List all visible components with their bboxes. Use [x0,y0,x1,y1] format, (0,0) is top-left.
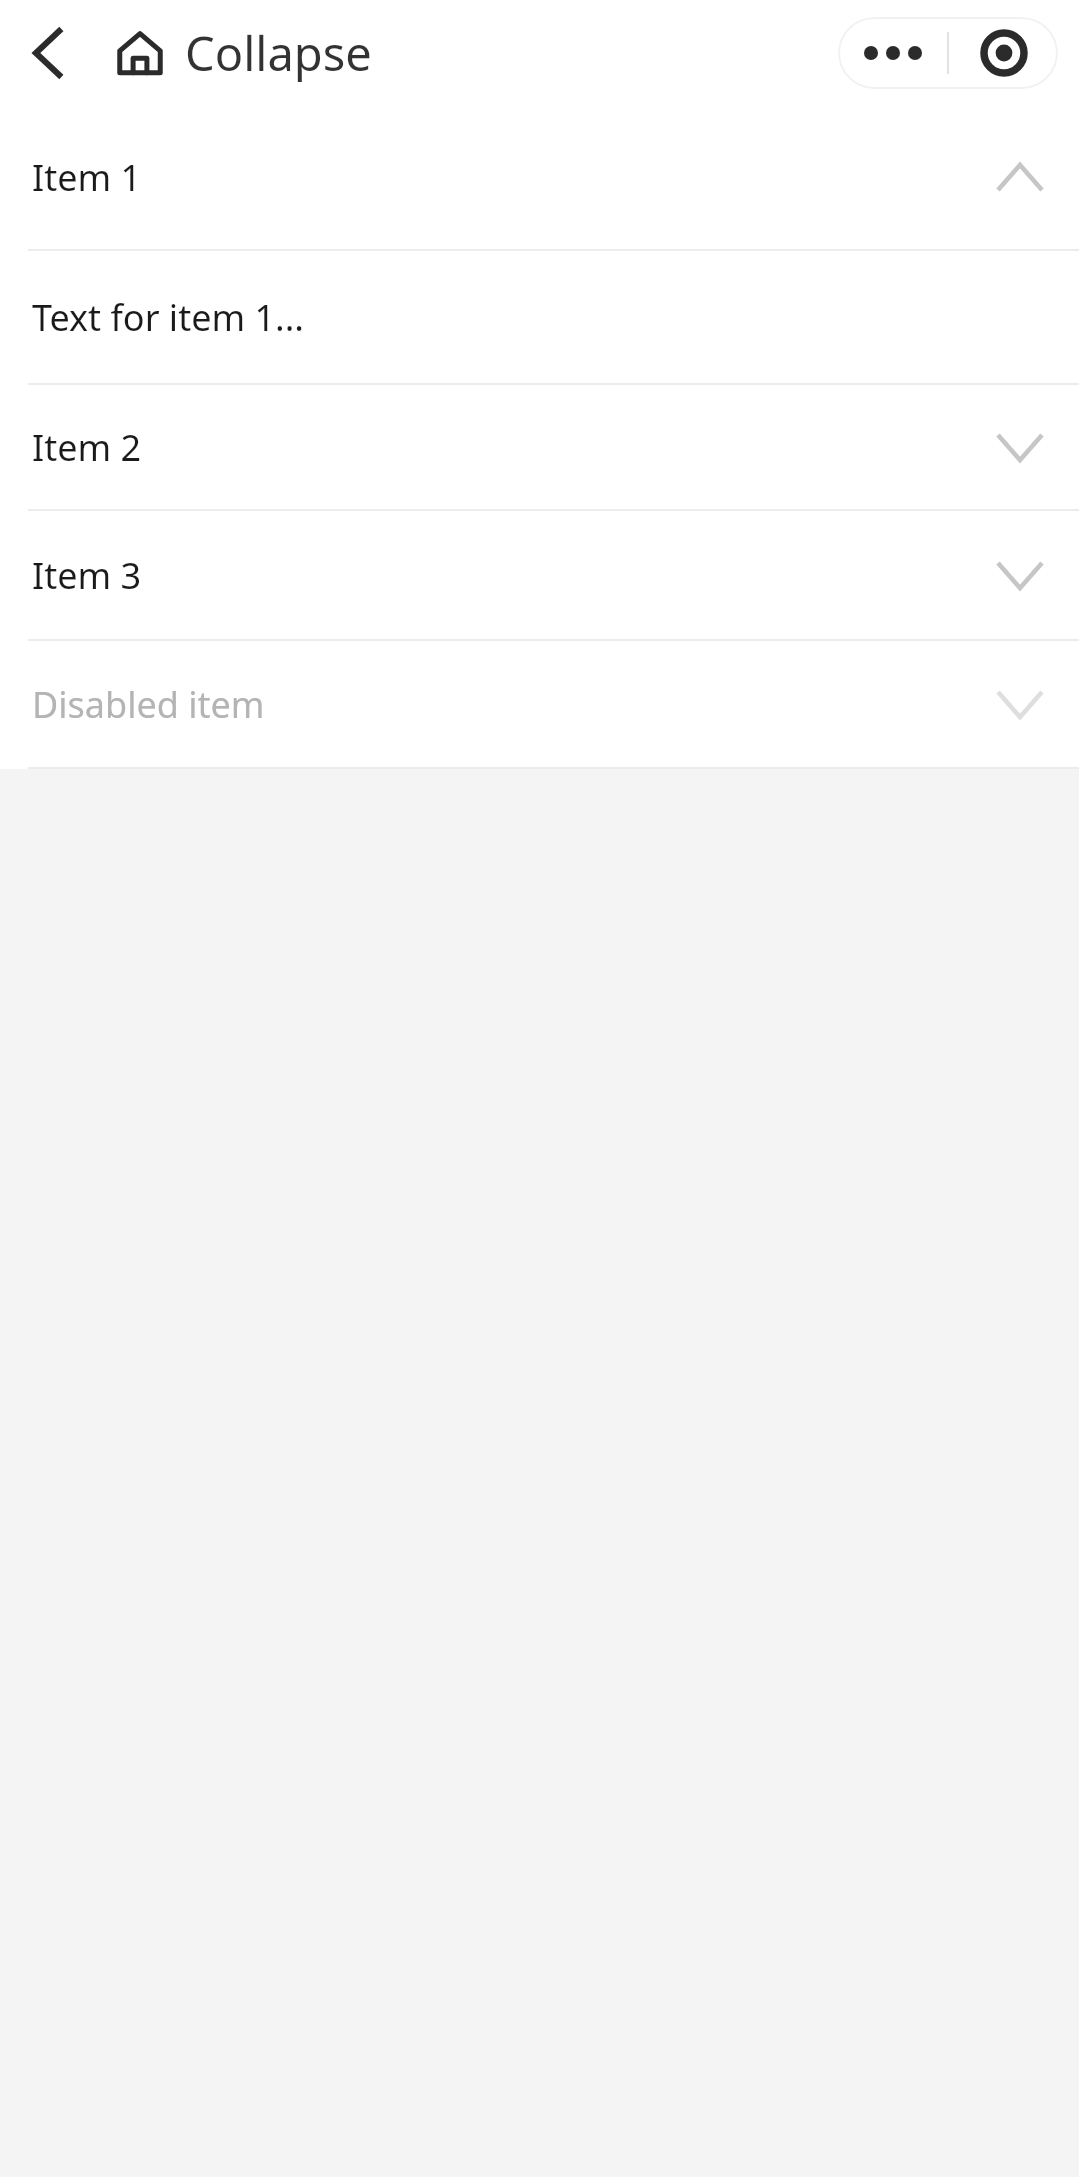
staticText: Item 2 [32,423,998,472]
staticText: Disabled item [32,680,998,729]
staticText: Collapse [185,21,372,85]
button[interactable]: Item 3 [0,511,1079,639]
staticText: Item 1 [32,153,998,202]
button[interactable]: Item 2 [0,385,1079,509]
button[interactable]: Back [10,15,86,91]
button[interactable]: Item 1 [0,105,1079,249]
staticText: Text for item 1... [32,293,305,342]
button[interactable]: Close [949,17,1058,89]
button[interactable]: Disabled item [0,641,1079,767]
button[interactable]: Home [104,17,176,89]
button[interactable]: More options [838,17,947,89]
staticText: Item 3 [32,551,998,600]
